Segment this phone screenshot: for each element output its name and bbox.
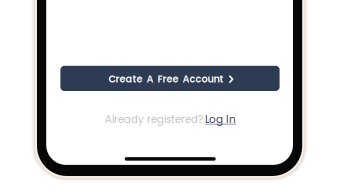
staticText: Log In (205, 112, 236, 127)
button[interactable]: Create A Free Account (60, 66, 280, 91)
staticText: Already registered? (105, 112, 203, 126)
staticText: Create A Free Account (108, 72, 223, 86)
button[interactable]: Already registered? Log In (105, 112, 236, 127)
